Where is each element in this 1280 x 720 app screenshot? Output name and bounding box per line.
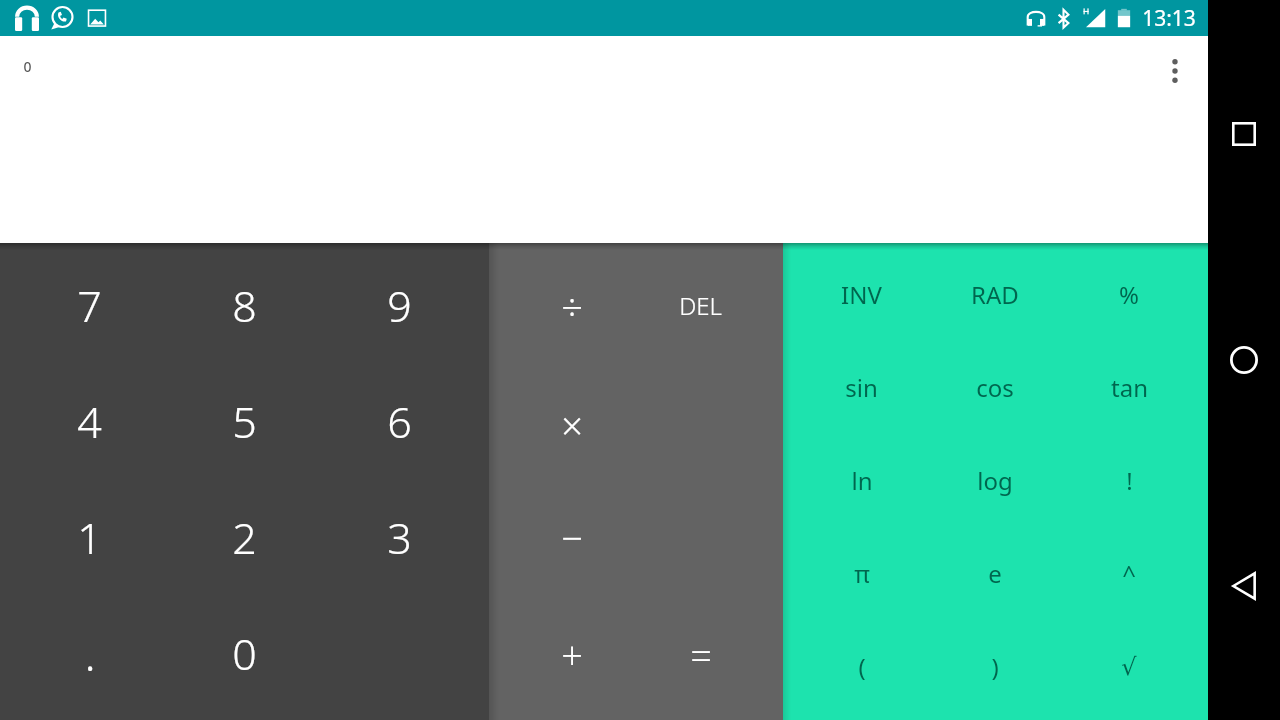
staticText: 7 (77, 276, 102, 335)
button[interactable]: 9 (322, 248, 477, 363)
button[interactable]: DEL (636, 248, 765, 363)
staticText: ! (1126, 464, 1133, 497)
staticText: − (561, 511, 583, 563)
button[interactable]: Square root (1062, 620, 1196, 713)
button[interactable]: 1 (12, 479, 167, 595)
button[interactable]: tan (1062, 341, 1196, 434)
button[interactable]: More options (1151, 47, 1199, 95)
button[interactable]: Decimal point (12, 595, 167, 711)
button[interactable]: Back (1220, 562, 1268, 610)
button[interactable]: Close parenthesis (928, 620, 1062, 713)
button[interactable]: Multiply (507, 363, 636, 479)
staticText: 1 (77, 508, 102, 567)
button[interactable]: Open parenthesis (795, 620, 928, 713)
staticText: 3 (387, 508, 412, 567)
staticText: DEL (679, 289, 722, 322)
button[interactable]: 6 (322, 363, 477, 479)
staticText: 5 (232, 392, 257, 451)
button[interactable]: Factorial (1062, 434, 1196, 527)
button[interactable]: e (928, 527, 1062, 620)
button[interactable]: RAD (928, 248, 1062, 341)
staticText: % (1119, 278, 1139, 311)
button[interactable]: cos (928, 341, 1062, 434)
staticText: sin (845, 371, 878, 404)
button[interactable]: INV (795, 248, 928, 341)
staticText: 0 (23, 57, 32, 76)
staticText: 6 (387, 392, 412, 451)
staticText: ^ (1122, 557, 1136, 590)
staticText: 13:13 (1142, 4, 1196, 33)
button[interactable]: Percent (1062, 248, 1196, 341)
button[interactable]: Add (507, 595, 636, 711)
staticText: ln (851, 464, 873, 497)
staticText: RAD (971, 278, 1019, 311)
staticText: ÷ (561, 280, 583, 332)
staticText: ) (991, 650, 999, 683)
button[interactable]: Subtract (507, 479, 636, 595)
staticText: ( (858, 650, 866, 683)
button[interactable]: 0 (167, 595, 322, 711)
button[interactable]: Divide (507, 248, 636, 363)
staticText: . (84, 622, 96, 685)
button[interactable]: 2 (167, 479, 322, 595)
button[interactable]: 3 (322, 479, 477, 595)
button[interactable]: Recents (1220, 110, 1268, 158)
staticText: e (988, 557, 1002, 590)
staticText: × (561, 399, 583, 451)
staticText: log (977, 464, 1013, 497)
button[interactable]: Power (1062, 527, 1196, 620)
staticText: tan (1111, 371, 1148, 404)
staticText: cos (976, 371, 1014, 404)
button[interactable]: Equals (636, 595, 765, 711)
button[interactable]: sin (795, 341, 928, 434)
button[interactable]: 7 (12, 248, 167, 363)
button[interactable]: log (928, 434, 1062, 527)
staticText: 2 (232, 508, 257, 567)
staticText: 0 (232, 624, 257, 683)
button[interactable]: Home (1220, 336, 1268, 384)
button[interactable]: 5 (167, 363, 322, 479)
staticText: √ (1121, 653, 1137, 681)
button[interactable]: ln (795, 434, 928, 527)
staticText: 4 (77, 392, 102, 451)
staticText: = (690, 629, 712, 681)
staticText: + (561, 629, 583, 681)
staticText: 8 (232, 276, 257, 335)
staticText: 9 (387, 276, 412, 335)
button[interactable]: 8 (167, 248, 322, 363)
staticText: INV (841, 278, 882, 311)
button[interactable]: 4 (12, 363, 167, 479)
button[interactable]: Pi (795, 527, 928, 620)
staticText: π (854, 557, 870, 590)
